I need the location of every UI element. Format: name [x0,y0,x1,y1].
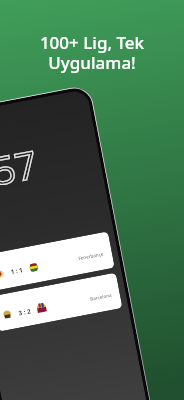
staticText: Barcelona [90,292,112,302]
staticText: 1957 [0,137,41,203]
button[interactable]: 1 : 1 [0,231,115,291]
staticText: 100+ Lig, Tek Uygulama! [0,31,184,74]
staticText: 1 : 1 [10,265,24,275]
button[interactable]: 3 : 2 [0,272,122,332]
staticText: Fenerbahçe [78,250,104,261]
staticText: 3 : 2 [18,306,32,316]
